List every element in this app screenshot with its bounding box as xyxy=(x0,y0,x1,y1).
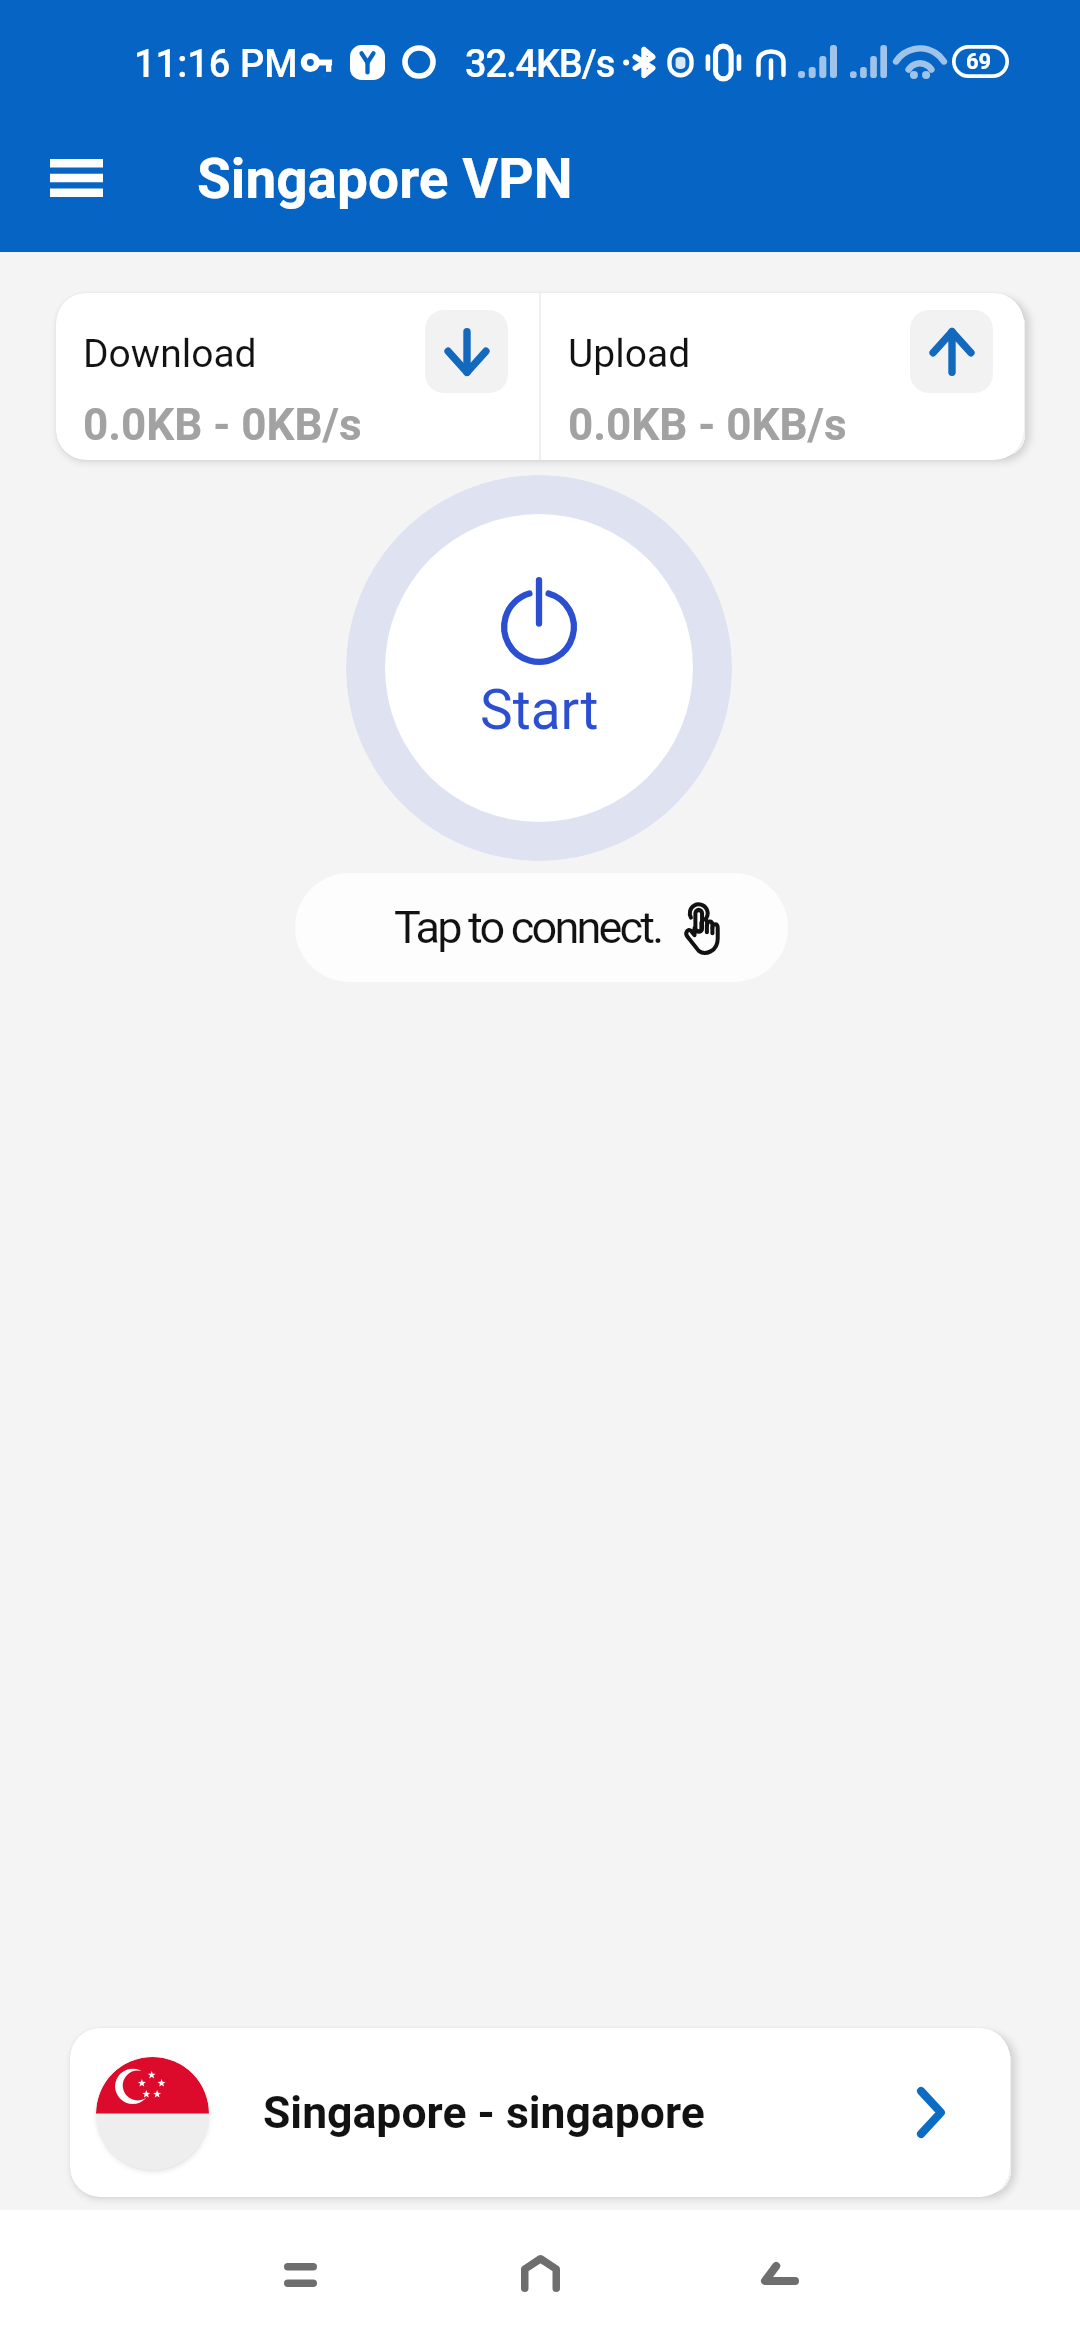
staticText: Singapore VPN xyxy=(197,147,573,211)
staticText: Upload xyxy=(568,331,691,377)
button[interactable]: Start VPN xyxy=(346,475,732,861)
staticText: 0.0KB - 0KB/s xyxy=(83,399,362,451)
button[interactable]: Singapore - singapore xyxy=(70,2028,1010,2197)
staticText: Tap to connect. xyxy=(394,901,662,954)
button[interactable]: Tap to connect. xyxy=(295,873,788,982)
button[interactable]: Recents xyxy=(240,2210,360,2340)
staticText: 32.4KB/s xyxy=(465,42,615,87)
staticText: Download xyxy=(83,331,257,377)
staticText: 69 xyxy=(966,49,992,75)
staticText: 11:16 PM xyxy=(134,42,298,87)
button[interactable]: Back xyxy=(720,2210,840,2336)
staticText: Singapore - singapore xyxy=(263,2087,705,2139)
button[interactable]: Menu xyxy=(34,135,119,220)
button[interactable]: Home xyxy=(480,2210,600,2336)
button[interactable]: Upload xyxy=(541,293,1024,460)
button[interactable]: Download xyxy=(56,293,539,460)
staticText: Start xyxy=(480,678,599,742)
staticText: 0.0KB - 0KB/s xyxy=(568,399,847,451)
